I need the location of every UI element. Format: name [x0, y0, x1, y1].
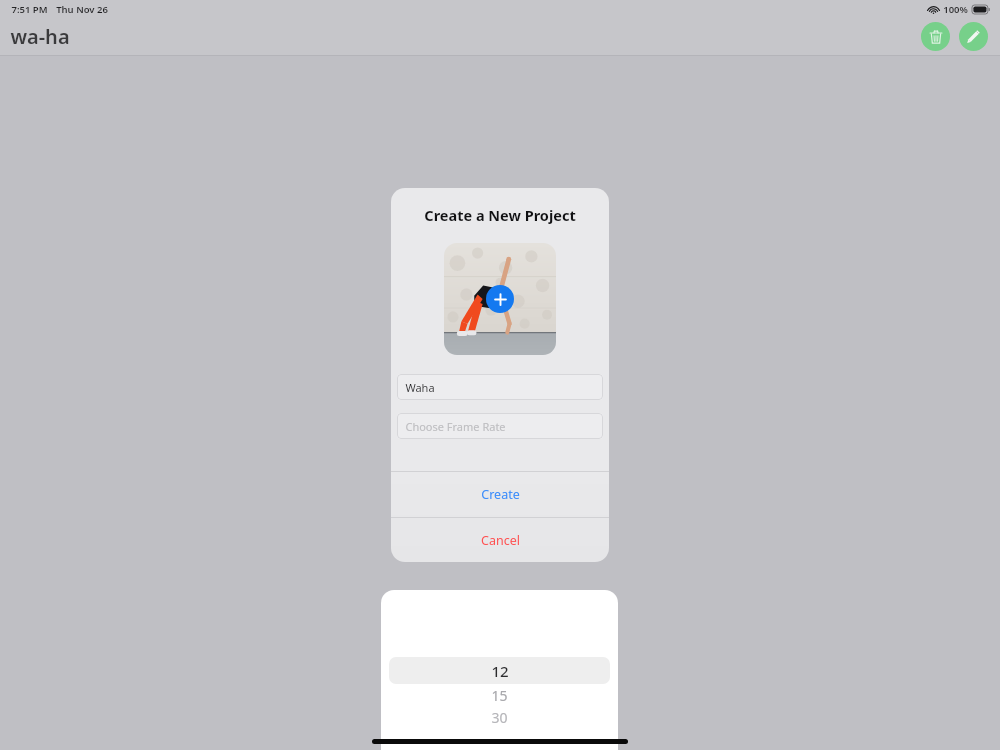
staticText: 7:51 PM	[11, 3, 48, 16]
button[interactable]: 15	[381, 684, 618, 706]
staticText: 15	[491, 686, 508, 705]
staticText: Create a New Project	[424, 205, 576, 225]
button[interactable]: Create	[391, 472, 609, 517]
button[interactable]: 12	[389, 657, 610, 684]
staticText: Create	[481, 486, 520, 503]
button[interactable]: Edit	[959, 22, 988, 51]
staticText: wa-ha	[10, 23, 70, 50]
button[interactable]: Cancel	[391, 518, 609, 562]
button[interactable]: 30	[381, 706, 618, 728]
staticText: 12	[491, 661, 509, 681]
button[interactable]: Add project image	[444, 243, 556, 355]
button[interactable]: Choose Frame Rate	[397, 413, 603, 439]
button[interactable]: Delete	[921, 22, 950, 51]
button[interactable]: Waha	[397, 374, 603, 400]
staticText: Waha	[405, 380, 435, 395]
staticText: Cancel	[481, 532, 520, 549]
staticText: 100%	[943, 3, 968, 16]
staticText: Choose Frame Rate	[405, 419, 506, 434]
staticText: Thu Nov 26	[56, 3, 108, 16]
staticText: 30	[491, 708, 508, 727]
